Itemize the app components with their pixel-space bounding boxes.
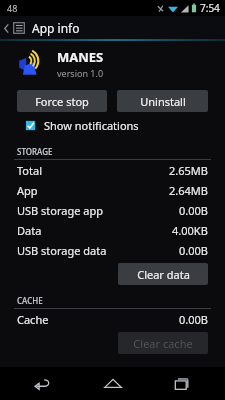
- staticText: Show notifications: [44, 118, 139, 133]
- button[interactable]: App info: [0, 16, 225, 39]
- staticText: 7:54: [200, 1, 220, 15]
- staticText: Clear data: [137, 267, 190, 282]
- button[interactable]: Recent apps: [155, 367, 211, 400]
- staticText: App: [17, 183, 38, 198]
- staticText: MANES: [57, 48, 104, 66]
- button[interactable]: Data: [17, 220, 208, 240]
- button[interactable]: Force stop: [17, 90, 107, 112]
- staticText: Data: [17, 223, 42, 238]
- button[interactable]: App: [17, 180, 208, 200]
- staticText: 48: [7, 2, 18, 14]
- button[interactable]: Show notifications: [25, 116, 225, 134]
- staticText: 0.00B: [179, 243, 208, 258]
- button[interactable]: Back: [14, 367, 70, 400]
- button[interactable]: Total: [17, 160, 208, 180]
- staticText: 0.00B: [179, 312, 208, 327]
- staticText: Force stop: [35, 94, 89, 109]
- button[interactable]: USB storage app: [17, 200, 208, 220]
- staticText: USB storage app: [17, 203, 104, 218]
- button[interactable]: Clear data: [118, 263, 208, 285]
- staticText: Total: [17, 163, 42, 178]
- staticText: Clear cache: [133, 336, 193, 351]
- staticText: Cache: [17, 312, 49, 327]
- button[interactable]: Home: [85, 367, 141, 400]
- staticText: 0.00B: [179, 203, 208, 218]
- staticText: 2.64MB: [169, 183, 208, 198]
- button[interactable]: Uninstall: [117, 90, 208, 112]
- staticText: USB storage data: [17, 243, 107, 258]
- staticText: version 1.0: [57, 67, 104, 79]
- button[interactable]: Cache: [17, 309, 208, 329]
- button[interactable]: Clear cache: [118, 332, 208, 354]
- button[interactable]: USB storage data: [17, 240, 208, 260]
- staticText: CACHE: [17, 295, 43, 306]
- staticText: 2.65MB: [169, 163, 208, 178]
- staticText: App info: [32, 20, 80, 36]
- staticText: Uninstall: [140, 94, 186, 109]
- staticText: 4.00KB: [172, 223, 208, 238]
- staticText: STORAGE: [17, 146, 53, 157]
